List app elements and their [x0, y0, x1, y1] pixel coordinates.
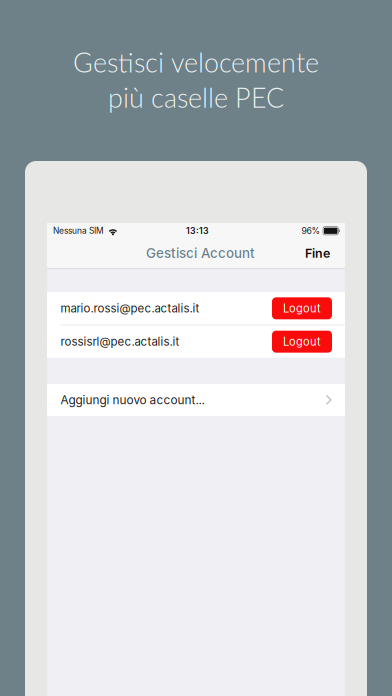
staticText: Logout — [283, 302, 321, 315]
button[interactable]: Logout — [272, 331, 332, 353]
staticText: più caselle PEC — [108, 81, 284, 113]
staticText: Logout — [283, 335, 321, 348]
button[interactable]: Fine — [295, 240, 345, 267]
staticText: 96% — [301, 225, 320, 236]
button[interactable]: Aggiungi nuovo account... — [47, 384, 345, 416]
staticText: Gestisci Account — [146, 245, 255, 261]
staticText: Nessuna SIM — [53, 226, 104, 236]
button[interactable]: Logout — [272, 297, 332, 319]
staticText: mario.rossi@pec.actalis.it — [60, 301, 199, 315]
staticText: Gestisci velocemente — [73, 46, 319, 78]
staticText: rossisrl@pec.actalis.it — [60, 335, 179, 349]
staticText: Aggiungi nuovo account... — [60, 393, 204, 407]
staticText: Fine — [305, 246, 330, 261]
staticText: 13:13 — [186, 225, 209, 236]
